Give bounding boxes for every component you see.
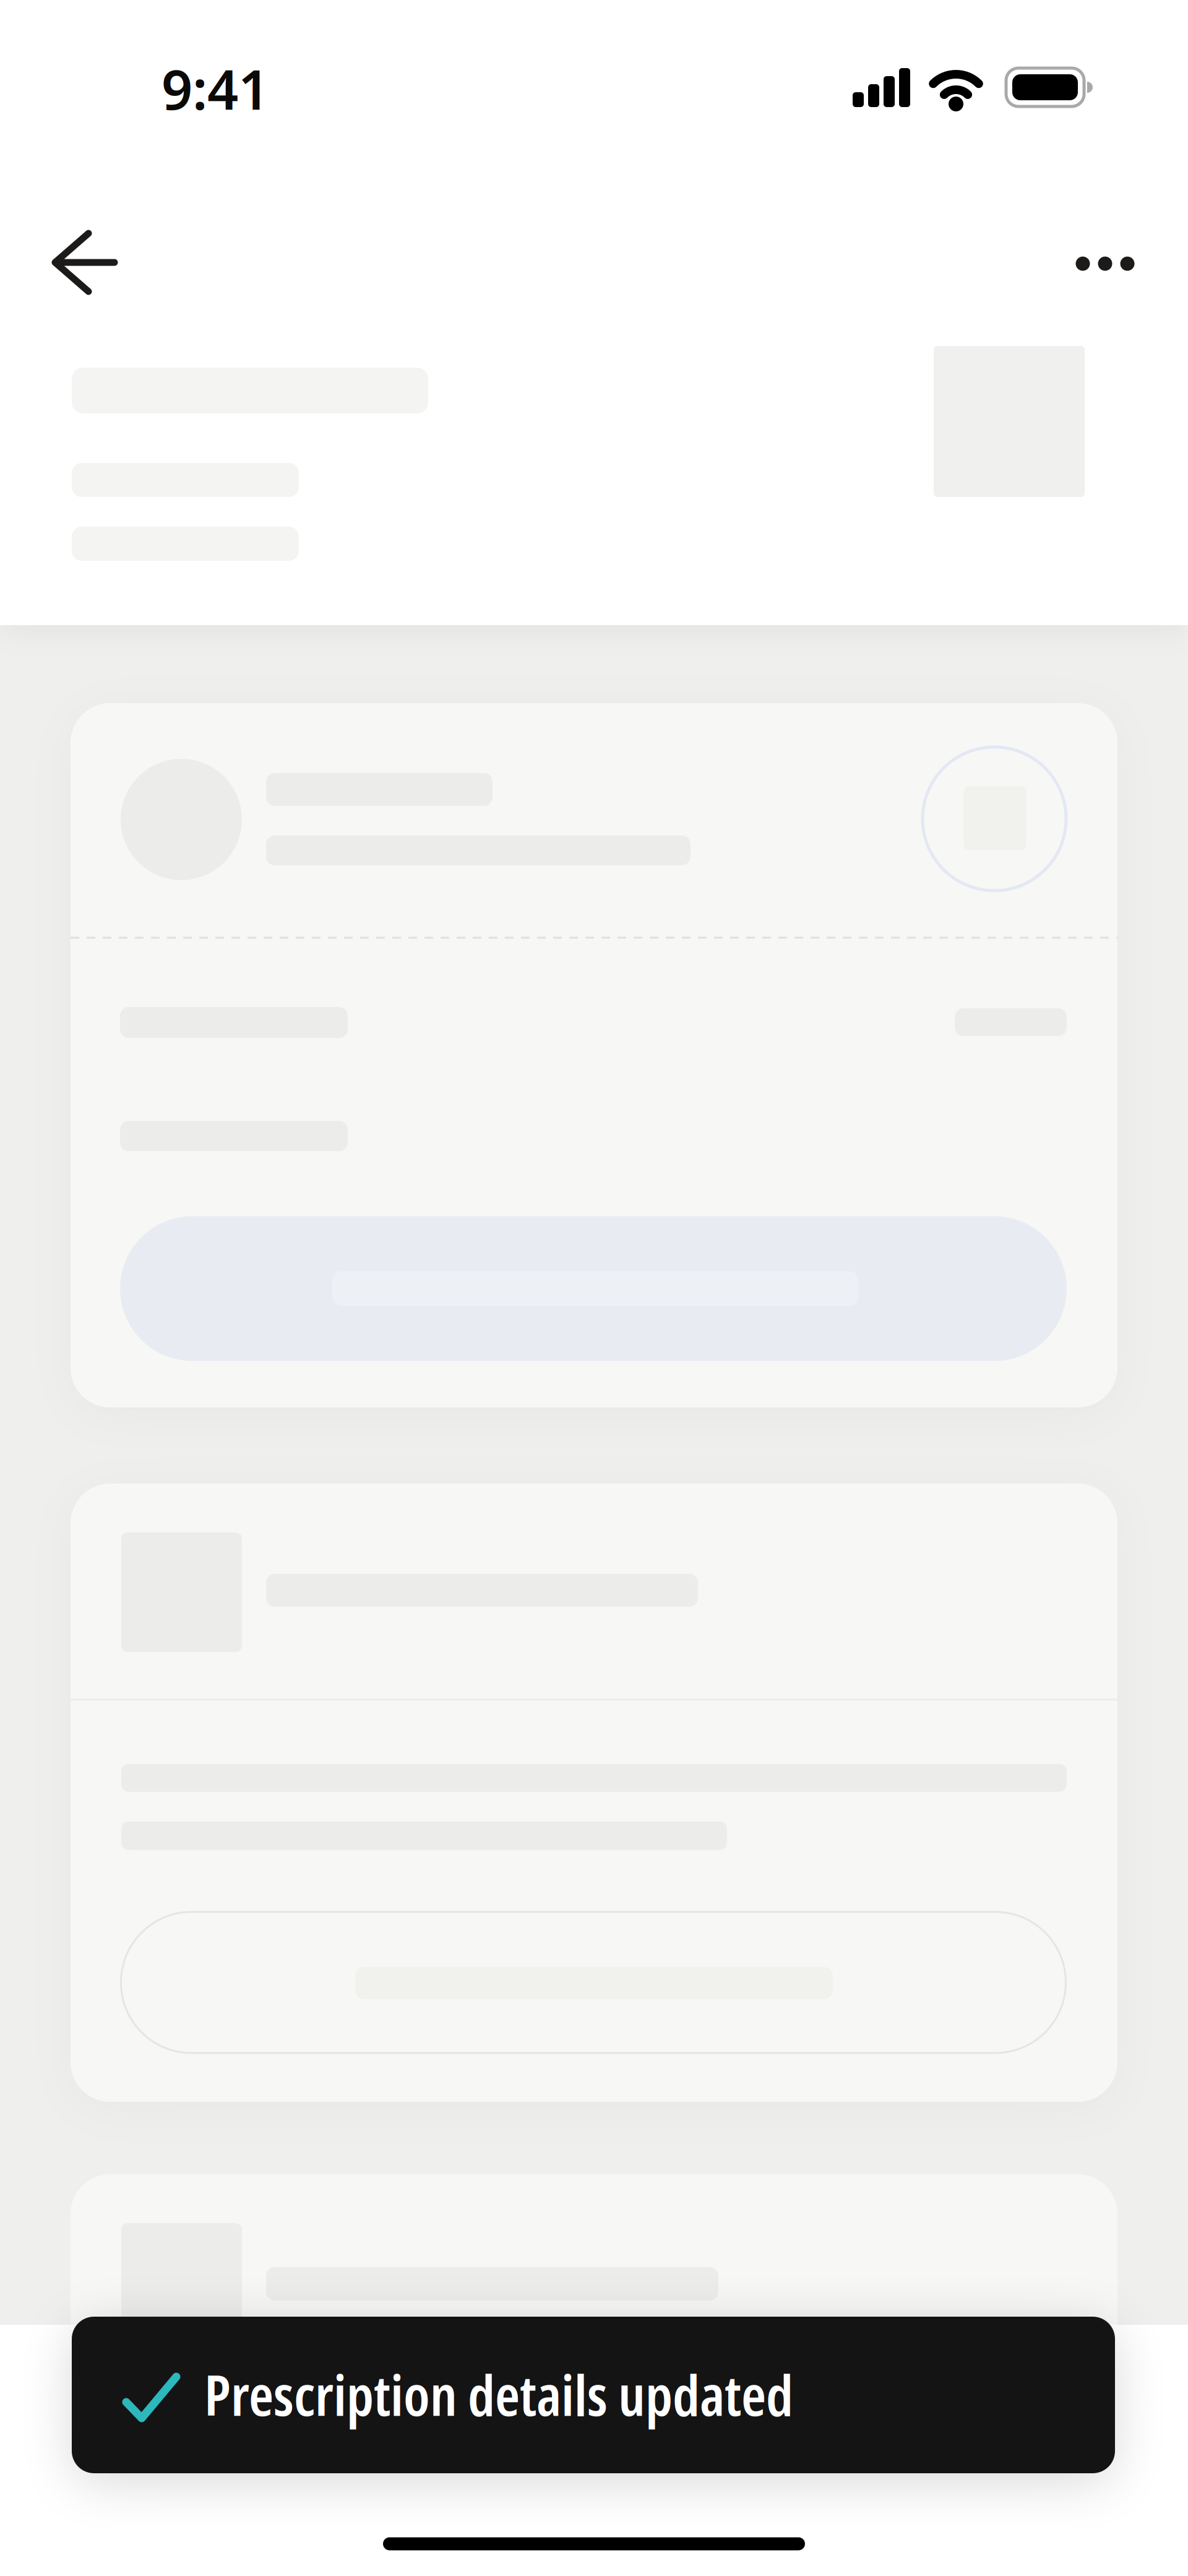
button[interactable]: Back	[42, 219, 129, 306]
staticText: Prescription details updated	[204, 2356, 793, 2432]
button[interactable]: More options	[1062, 227, 1148, 301]
staticText: 9:41	[161, 51, 269, 126]
